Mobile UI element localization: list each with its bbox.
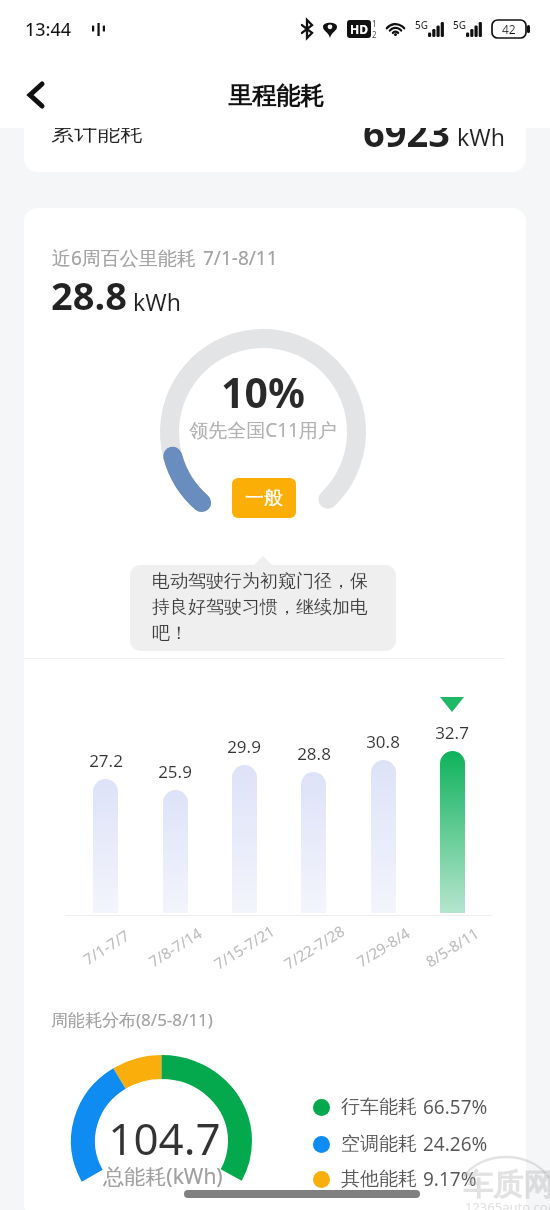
staticText: 车质网 <box>463 1166 550 1204</box>
staticText: 29.9 <box>227 735 261 758</box>
staticText: 13:44 <box>25 17 72 42</box>
staticText: 里程能耗 <box>228 81 324 111</box>
staticText: 32.7 <box>435 721 469 744</box>
staticText: 电动驾驶行为初窥门径，保持良好驾驶习惯，继续加电吧！ <box>152 570 378 645</box>
staticText: HD <box>350 21 368 37</box>
staticText: 104.7 <box>108 1108 221 1168</box>
staticText: 9.17% <box>423 1166 477 1192</box>
staticText: 5G <box>415 18 428 32</box>
staticText: 30.8 <box>366 730 400 753</box>
staticText: 周能耗分布(8/5-8/11) <box>51 1008 213 1031</box>
staticText: kWh <box>457 121 505 152</box>
button[interactable]: 一般 <box>232 478 296 518</box>
staticText: 7/1-8/11 <box>203 245 278 271</box>
staticText: 7/15-7/21 <box>192 909 296 985</box>
staticText: 6923 <box>363 106 450 158</box>
staticText: 总能耗(kWh) <box>103 1162 223 1191</box>
staticText: 12365auto.com <box>465 1198 550 1210</box>
staticText: 10% <box>221 364 305 420</box>
staticText: 7/8-7/14 <box>123 909 227 985</box>
staticText: 累计能耗 <box>51 118 143 147</box>
staticText: 24.26% <box>423 1131 488 1157</box>
button[interactable]: Back <box>13 72 59 118</box>
staticText: 近6周百公里能耗 <box>52 245 196 271</box>
staticText: 1 <box>372 18 377 29</box>
staticText: 一般 <box>245 486 283 510</box>
staticText: 28.8 <box>51 269 127 321</box>
staticText: 空调能耗 <box>341 1132 417 1156</box>
staticText: 7/1-7/7 <box>54 909 158 985</box>
staticText: 其他能耗 <box>341 1167 417 1191</box>
staticText: 25.9 <box>158 760 192 783</box>
staticText: 28.8 <box>297 742 331 765</box>
staticText: 42 <box>502 21 516 37</box>
button[interactable]: 累计能耗 <box>24 100 526 172</box>
staticText: 27.2 <box>89 749 123 772</box>
staticText: 行车能耗 <box>341 1095 417 1119</box>
staticText: kWh <box>133 286 181 317</box>
staticText: 5G <box>453 18 466 32</box>
staticText: 8/5-8/11 <box>400 909 504 985</box>
staticText: 7/29-8/4 <box>331 909 435 985</box>
staticText: 领先全国C11用户 <box>189 417 337 443</box>
staticText: 7/22-7/28 <box>262 909 366 985</box>
staticText: 2 <box>372 29 377 40</box>
staticText: 66.57% <box>423 1094 488 1120</box>
